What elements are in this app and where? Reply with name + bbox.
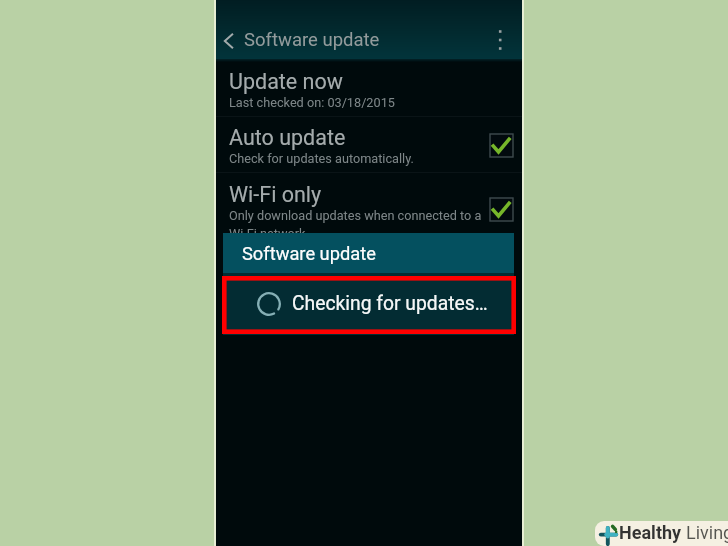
button[interactable]: More options: [486, 18, 514, 46]
staticText: Check for updates automatically.: [229, 151, 414, 166]
staticText: Software update: [244, 29, 380, 51]
staticText: Auto update: [229, 125, 346, 150]
staticText: Update now: [229, 69, 343, 94]
button[interactable]: Checking for updates…: [223, 273, 514, 335]
staticText: Only download updates when connected to …: [229, 208, 482, 223]
staticText: Healthy: [619, 522, 682, 543]
staticText: Wi-Fi network.: [229, 226, 309, 241]
button[interactable]: Wi-Fi only: [216, 173, 522, 235]
staticText: Wi-Fi only: [229, 182, 322, 207]
staticText: Checking for updates…: [292, 292, 488, 315]
staticText: Software update: [242, 243, 376, 264]
button[interactable]: Auto update: [216, 117, 522, 172]
staticText: Last checked on: 03/18/2015: [229, 95, 395, 110]
button[interactable]: Back: [215, 27, 243, 55]
button[interactable]: Toggle Auto update: [490, 134, 513, 157]
button[interactable]: Update now: [216, 62, 522, 116]
staticText: Living: [686, 522, 728, 543]
button[interactable]: Toggle Wi-Fi only: [490, 198, 513, 221]
